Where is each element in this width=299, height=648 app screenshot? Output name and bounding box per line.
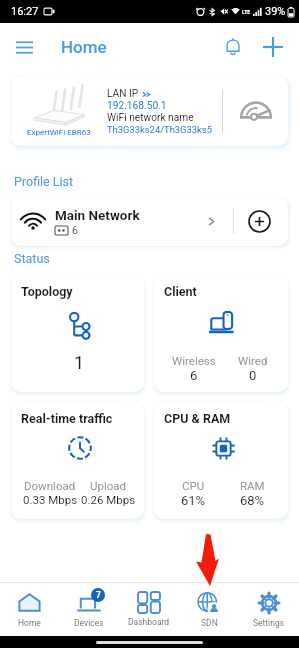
button[interactable]: Client: [154, 275, 288, 392]
staticText: SDN: [201, 618, 218, 628]
staticText: 61%: [181, 493, 206, 508]
staticText: LAN IP: [107, 88, 139, 100]
staticText: Topology: [21, 284, 73, 299]
staticText: 1: [74, 352, 85, 373]
staticText: Wired: [238, 354, 268, 367]
staticText: Settings: [253, 618, 285, 628]
staticText: Status: [14, 251, 50, 266]
staticText: 68%: [240, 493, 265, 508]
staticText: Profile List: [14, 174, 74, 189]
staticText: Real-time traffic: [21, 411, 113, 426]
staticText: Th3G33ks24/Th3G33ks5: [107, 124, 212, 135]
button[interactable]: Settings: [239, 583, 299, 636]
staticText: 7: [96, 590, 101, 600]
staticText: 0.33 Mbps: [23, 493, 78, 506]
button[interactable]: Topology: [11, 275, 144, 392]
staticText: Home: [61, 37, 107, 57]
staticText: 0: [249, 368, 257, 383]
button[interactable]: Add: [253, 27, 293, 67]
staticText: Main Network: [55, 207, 140, 223]
button[interactable]: CPU & RAM: [154, 402, 288, 519]
staticText: LTE: [242, 9, 251, 15]
button[interactable]: Real-time traffic: [11, 402, 144, 519]
staticText: 16:27: [11, 5, 39, 18]
staticText: Upload: [90, 479, 127, 492]
button[interactable]: Main Network: [11, 196, 288, 246]
button[interactable]: ExpertWiFi EBR63: [11, 76, 288, 146]
button[interactable]: Home: [0, 583, 59, 636]
staticText: Devices: [74, 618, 104, 628]
staticText: 192.168.50.1: [107, 100, 167, 112]
staticText: 39%: [265, 5, 286, 18]
button[interactable]: Menu: [5, 28, 43, 66]
button[interactable]: Dashboard: [119, 583, 179, 636]
staticText: 0.26 Mbps: [81, 493, 136, 506]
staticText: Wireless: [172, 354, 216, 367]
staticText: 6: [72, 224, 78, 236]
button[interactable]: Add profile: [248, 210, 271, 233]
staticText: Dashboard: [128, 617, 170, 627]
staticText: RAM: [240, 479, 265, 492]
staticText: WiFi network name: [107, 112, 194, 124]
button[interactable]: Notifications: [213, 27, 253, 67]
button[interactable]: SDN: [179, 583, 239, 636]
staticText: Download: [24, 479, 76, 492]
staticText: Home: [18, 618, 41, 628]
staticText: CPU: [182, 479, 205, 492]
button[interactable]: 7: [59, 583, 119, 636]
staticText: ExpertWiFi EBR63: [27, 128, 91, 137]
staticText: CPU & RAM: [164, 411, 231, 426]
staticText: 6: [190, 368, 198, 383]
staticText: Client: [164, 284, 197, 299]
